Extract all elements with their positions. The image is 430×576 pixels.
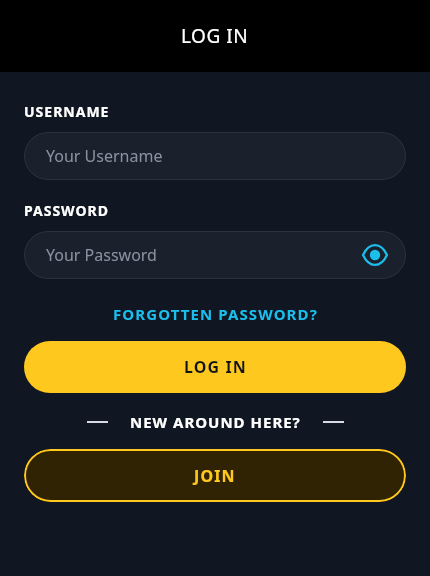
button[interactable]: Your Password bbox=[24, 231, 406, 279]
staticText: Your Password bbox=[46, 244, 157, 266]
staticText: Your Username bbox=[46, 145, 163, 167]
button[interactable]: JOIN bbox=[24, 449, 406, 502]
staticText: LOG IN bbox=[184, 356, 247, 378]
staticText: NEW AROUND HERE? bbox=[130, 412, 301, 432]
staticText: PASSWORD bbox=[24, 201, 110, 220]
staticText: LOG IN bbox=[181, 23, 249, 49]
button[interactable]: LOG IN bbox=[24, 341, 406, 393]
button[interactable]: Show password bbox=[358, 238, 392, 272]
staticText: JOIN bbox=[194, 465, 236, 487]
staticText: FORGOTTEN PASSWORD? bbox=[113, 304, 318, 324]
button[interactable]: FORGOTTEN PASSWORD? bbox=[0, 300, 430, 328]
staticText: USERNAME bbox=[24, 102, 110, 121]
button[interactable]: Your Username bbox=[24, 132, 406, 180]
